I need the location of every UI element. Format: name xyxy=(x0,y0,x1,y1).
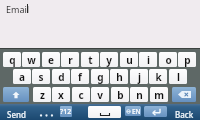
button[interactable]: Enter xyxy=(144,106,167,117)
staticText: m xyxy=(154,88,164,102)
staticText: Send xyxy=(7,109,26,120)
staticText: j xyxy=(138,70,141,84)
staticText: y xyxy=(106,53,112,67)
button[interactable]: z xyxy=(33,87,51,102)
button[interactable]: l xyxy=(169,69,187,84)
button[interactable]: t xyxy=(81,52,99,67)
button[interactable]: k xyxy=(149,69,167,84)
button[interactable]: Backspace xyxy=(172,87,196,102)
staticText: c xyxy=(78,88,84,102)
button[interactable]: Space xyxy=(88,106,121,118)
button[interactable]: m xyxy=(150,87,168,102)
staticText: t xyxy=(88,53,93,67)
button[interactable]: p xyxy=(178,52,196,67)
staticText: x xyxy=(58,88,64,102)
button[interactable]: w xyxy=(22,52,40,67)
staticText: h xyxy=(116,70,123,84)
staticText: w xyxy=(27,53,36,67)
button[interactable]: Change language xyxy=(125,106,141,116)
button[interactable]: c xyxy=(72,87,90,102)
button[interactable]: x xyxy=(52,87,70,102)
staticText: n xyxy=(136,88,143,102)
button[interactable]: Send xyxy=(0,105,33,120)
button[interactable]: Back xyxy=(168,105,200,120)
staticText: Back xyxy=(175,109,194,120)
button[interactable]: q xyxy=(3,52,21,67)
button[interactable]: ?12 xyxy=(60,106,72,117)
button[interactable]: b xyxy=(111,87,129,102)
staticText: g xyxy=(97,70,104,84)
staticText: a xyxy=(19,70,25,84)
staticText: u xyxy=(126,53,133,67)
staticText: e xyxy=(48,53,54,67)
staticText: z xyxy=(40,88,45,102)
staticText: b xyxy=(117,88,124,102)
staticText: EN xyxy=(132,107,141,116)
button[interactable]: a xyxy=(13,69,31,84)
button[interactable]: y xyxy=(100,52,118,67)
button[interactable]: i xyxy=(139,52,157,67)
staticText: f xyxy=(78,70,82,84)
staticText: r xyxy=(68,53,73,67)
button[interactable]: v xyxy=(91,87,109,102)
button[interactable]: e xyxy=(42,52,60,67)
staticText: q xyxy=(9,53,16,67)
staticText: v xyxy=(97,88,103,102)
staticText: k xyxy=(155,70,162,84)
button[interactable]: g xyxy=(91,69,109,84)
button[interactable]: More options xyxy=(34,105,59,120)
staticText: d xyxy=(58,70,65,84)
staticText: s xyxy=(38,70,44,84)
staticText: ?12 xyxy=(60,107,72,117)
button[interactable]: o xyxy=(159,52,177,67)
button[interactable]: f xyxy=(71,69,89,84)
button[interactable]: u xyxy=(120,52,138,67)
button[interactable]: n xyxy=(130,87,148,102)
button[interactable]: s xyxy=(32,69,50,84)
staticText: Email xyxy=(6,3,30,15)
staticText: p xyxy=(184,53,191,67)
button[interactable]: r xyxy=(61,52,79,67)
button[interactable]: h xyxy=(110,69,128,84)
button[interactable]: Shift xyxy=(3,87,29,102)
staticText: i xyxy=(147,53,150,67)
button[interactable]: j xyxy=(130,69,148,84)
staticText: o xyxy=(165,53,172,67)
button[interactable]: d xyxy=(52,69,70,84)
staticText: l xyxy=(177,70,180,84)
